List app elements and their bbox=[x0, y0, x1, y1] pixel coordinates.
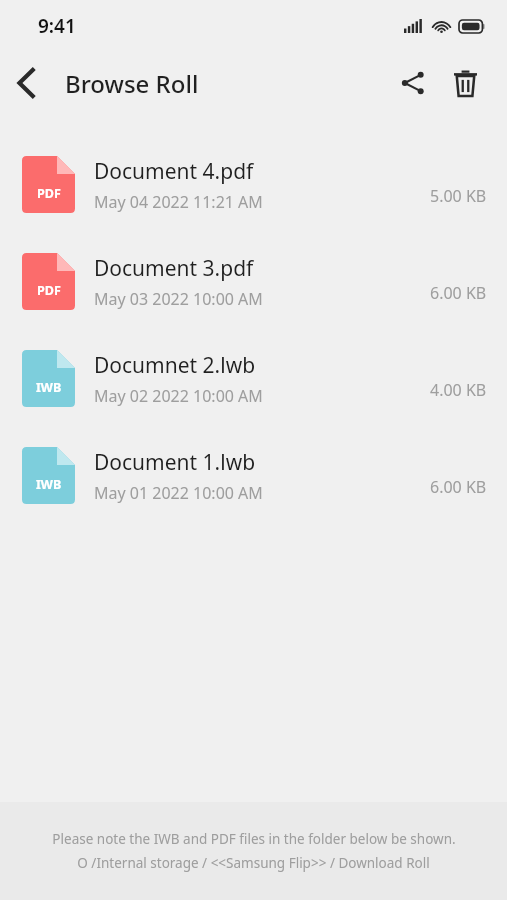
button[interactable]: PDF bbox=[0, 233, 507, 330]
staticText: PDF bbox=[37, 282, 61, 299]
staticText: Document 4.pdf bbox=[94, 157, 254, 186]
staticText: O /Internal storage / <<Samsung Flip>> /… bbox=[77, 854, 430, 872]
button[interactable]: IWB bbox=[0, 330, 507, 427]
staticText: Documnet 2.lwb bbox=[94, 351, 256, 380]
button[interactable]: Delete bbox=[439, 57, 491, 109]
staticText: 5.00 KB bbox=[430, 185, 487, 207]
staticText: May 02 2022 10:00 AM bbox=[94, 385, 263, 407]
staticText: 4.00 KB bbox=[430, 379, 487, 401]
staticText: May 03 2022 10:00 AM bbox=[94, 288, 263, 310]
button[interactable]: Back bbox=[0, 56, 54, 110]
button[interactable]: Share bbox=[387, 57, 439, 109]
button[interactable]: IWB bbox=[0, 427, 507, 524]
staticText: PDF bbox=[37, 185, 61, 202]
staticText: Browse Roll bbox=[65, 67, 199, 100]
staticText: IWB bbox=[36, 379, 62, 396]
staticText: May 01 2022 10:00 AM bbox=[94, 482, 263, 504]
staticText: May 04 2022 11:21 AM bbox=[94, 191, 263, 213]
button[interactable]: PDF bbox=[0, 136, 507, 233]
staticText: Please note the IWB and PDF files in the… bbox=[52, 830, 456, 848]
staticText: Document 1.lwb bbox=[94, 448, 256, 477]
staticText: Document 3.pdf bbox=[94, 254, 254, 283]
staticText: IWB bbox=[36, 476, 62, 493]
staticText: 9:41 bbox=[38, 13, 76, 39]
staticText: 6.00 KB bbox=[430, 282, 487, 304]
staticText: 6.00 KB bbox=[430, 476, 487, 498]
